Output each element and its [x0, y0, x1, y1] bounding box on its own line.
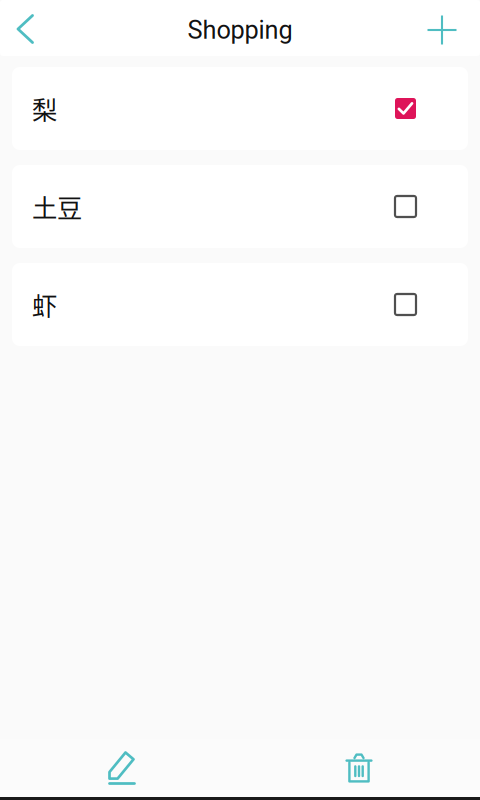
staticText: 梨 — [32, 90, 57, 127]
staticText: 土豆 — [32, 188, 82, 225]
button[interactable]: Edit — [86, 739, 158, 797]
staticText: 虾 — [32, 286, 57, 323]
button[interactable]: 土豆 — [12, 165, 468, 248]
button[interactable]: 梨 — [12, 67, 468, 150]
button[interactable]: 虾 — [12, 263, 468, 346]
button[interactable]: Back — [0, 0, 48, 56]
staticText: Shopping — [187, 15, 292, 45]
button[interactable]: Add item — [414, 0, 470, 56]
button[interactable]: Delete — [323, 739, 395, 797]
